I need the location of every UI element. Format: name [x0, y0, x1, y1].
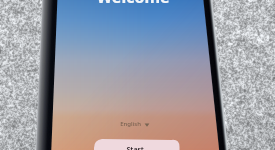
- button[interactable]: Select language, English: [116, 118, 152, 130]
- button[interactable]: [94, 140, 180, 150]
